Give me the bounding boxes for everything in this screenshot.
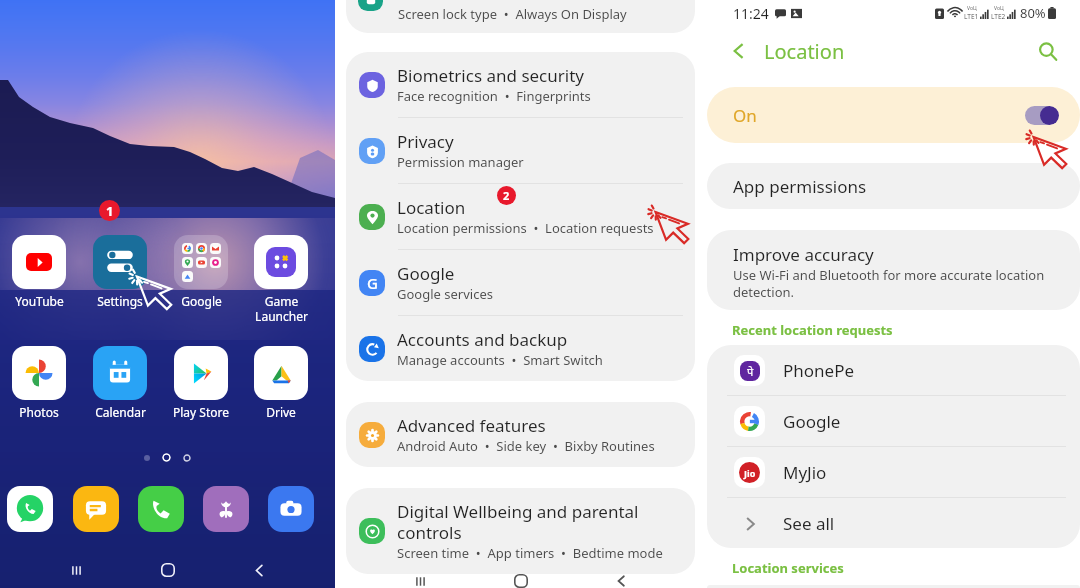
staticText: Calendar [95,404,146,420]
button[interactable]: Play Store [161,346,241,420]
staticText: पे [747,364,754,379]
staticText: Play Store [173,404,229,420]
staticText: Advanced features [397,414,546,437]
button[interactable] [203,486,249,532]
staticText: Biometrics and security [397,64,584,87]
button[interactable]: On [707,87,1080,143]
staticText: Google [783,410,841,433]
button[interactable]: Photos [0,346,79,420]
staticText: VoЦ [967,5,977,12]
button[interactable]: Advanced features [346,402,695,467]
staticText: Use Wi-Fi and Bluetooth for more accurat… [733,266,1045,301]
staticText: Screen time • App timers • Bedtime mode [397,544,663,562]
button[interactable]: Privacy [346,118,695,183]
button[interactable]: पे [707,345,1080,395]
button[interactable]: Settings [80,235,160,309]
staticText: Accounts and backup [397,328,568,351]
staticText: Face recognition • Fingerprints [397,87,591,105]
button[interactable]: Recents [61,555,91,585]
button[interactable] [7,486,53,532]
staticText: 80% [1020,4,1046,22]
staticText: Manage accounts • Smart Switch [397,351,603,369]
staticText: Recent location requests [732,321,893,339]
button[interactable]: Jio [707,447,1080,497]
staticText: Jio [744,467,756,479]
staticText: Permission manager [397,153,524,171]
staticText: Location permissions • Location requests [397,219,654,237]
button[interactable]: Location [346,184,695,249]
button[interactable]: Home [153,555,183,585]
button[interactable]: Calendar [80,346,160,420]
staticText: Digital Wellbeing and parental controls [397,500,639,544]
staticText: Google services [397,285,493,303]
button[interactable]: Home [506,574,536,588]
button[interactable]: YouTube [0,235,79,309]
button[interactable]: Game Launcher [241,235,321,324]
staticText: YouTube [15,293,64,309]
staticText: App permissions [733,175,867,198]
button[interactable]: Back [606,574,636,588]
button[interactable]: Screen lock type • Always On Display [346,0,695,33]
button[interactable]: Drive [241,346,321,420]
staticText: LTE2 [991,12,1006,21]
staticText: MyJio [783,461,827,484]
staticText: 11:24 [733,4,769,23]
staticText: VoЦ [994,5,1004,12]
button[interactable]: Search [1034,38,1060,64]
staticText: Screen lock type • Always On Display [398,5,627,23]
staticText: See all [783,512,835,535]
staticText: Game Launcher [255,293,308,324]
button[interactable]: See all [707,498,1080,548]
button[interactable] [138,486,184,532]
button[interactable] [268,486,314,532]
staticText: Settings [97,293,143,309]
staticText: 1 [106,202,114,220]
staticText: On [733,104,757,127]
staticText: Location services [732,559,844,577]
button[interactable] [73,486,119,532]
staticText: 2 [503,188,510,203]
button[interactable]: Google [707,396,1080,446]
button[interactable]: App permissions [707,163,1080,209]
staticText: Google [181,293,222,309]
button[interactable]: G [346,250,695,315]
staticText: Location [764,38,845,65]
button[interactable]: Biometrics and security [346,52,695,117]
staticText: PhonePe [783,359,855,382]
staticText: Photos [19,404,59,420]
staticText: Google [397,262,455,285]
button[interactable]: Recents [405,574,435,588]
button[interactable]: Back [726,38,752,64]
button[interactable]: Improve accuracy [707,230,1080,310]
button[interactable]: Back [244,555,274,585]
staticText: Location [397,196,466,219]
staticText: Android Auto • Side key • Bixby Routines [397,437,655,455]
staticText: Drive [266,404,296,420]
button[interactable]: Digital Wellbeing and parental controls [346,488,695,574]
button[interactable]: Accounts and backup [346,316,695,381]
staticText: Privacy [397,130,454,153]
staticText: LTE1 [964,12,979,21]
button[interactable]: Google [161,235,241,309]
staticText: Improve accuracy [733,243,874,266]
staticText: G [367,273,378,293]
